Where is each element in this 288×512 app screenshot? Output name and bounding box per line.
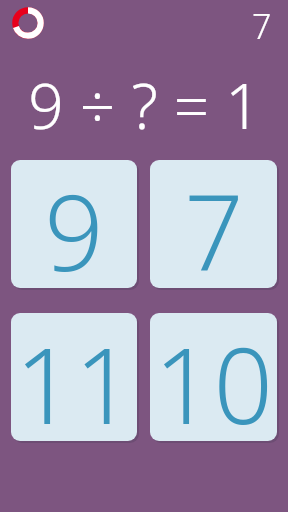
staticText: 9 ÷ ? = 1 [28, 63, 261, 147]
button[interactable]: 10 [150, 313, 277, 441]
button[interactable]: 7 [252, 3, 272, 49]
staticText: 7 [252, 3, 272, 49]
button[interactable]: 7 [150, 160, 277, 288]
staticText: 11 [15, 313, 134, 441]
staticText: 10 [154, 313, 273, 441]
staticText: 9 [44, 160, 104, 288]
button[interactable]: 11 [11, 313, 137, 441]
staticText: 7 [184, 160, 244, 288]
button[interactable]: 9 [11, 160, 137, 288]
button[interactable]: Timer remaining [8, 3, 48, 43]
